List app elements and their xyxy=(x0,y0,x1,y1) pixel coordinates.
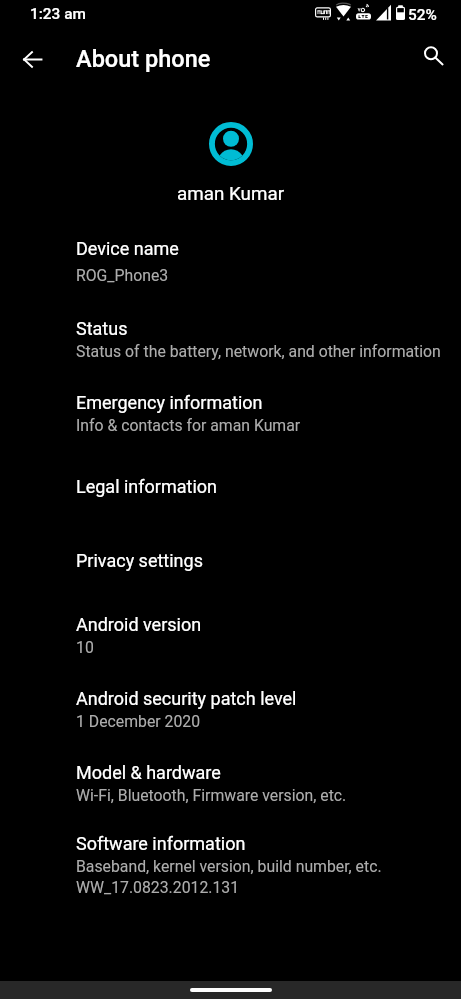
button[interactable]: Navigate up xyxy=(8,35,56,83)
staticText: 1:23 am xyxy=(30,4,86,23)
button[interactable]: Account avatar xyxy=(207,120,255,168)
staticText: 10 xyxy=(76,636,94,657)
button[interactable]: Android security patch level xyxy=(0,671,461,745)
staticText: Status xyxy=(76,316,128,340)
staticText: Android security patch level xyxy=(76,686,297,710)
staticText: Emergency information xyxy=(76,390,263,414)
button[interactable]: Legal information xyxy=(0,449,461,523)
button[interactable]: Software information xyxy=(0,819,461,908)
staticText: Model & hardware xyxy=(76,760,221,784)
staticText: Wi-Fi, Bluetooth, Firmware version, etc. xyxy=(76,784,347,805)
staticText: Info & contacts for aman Kumar xyxy=(76,414,301,435)
staticText: aman Kumar xyxy=(177,182,284,205)
staticText: Baseband, kernel version, build number, … xyxy=(76,855,382,876)
staticText: About phone xyxy=(76,45,211,73)
staticText: 1 December 2020 xyxy=(76,710,201,731)
staticText: Status of the battery, network, and othe… xyxy=(76,340,441,361)
staticText: Android version xyxy=(76,612,202,636)
staticText: WW_17.0823.2012.131 xyxy=(76,876,240,897)
button[interactable]: Model & hardware xyxy=(0,745,461,819)
staticText: 52% xyxy=(408,3,437,25)
button[interactable]: Privacy settings xyxy=(0,523,461,597)
button[interactable]: Home xyxy=(190,988,272,992)
button[interactable]: Device name xyxy=(0,220,461,301)
button[interactable]: Emergency information xyxy=(0,375,461,449)
staticText: Privacy settings xyxy=(76,548,203,572)
staticText: Legal information xyxy=(76,474,217,498)
staticText: ROG_Phone3 xyxy=(76,264,169,285)
staticText: Software information xyxy=(76,831,246,855)
button[interactable]: Search xyxy=(410,35,458,83)
staticText: Device name xyxy=(76,236,179,260)
button[interactable]: Status xyxy=(0,301,461,375)
button[interactable]: Android version xyxy=(0,597,461,671)
